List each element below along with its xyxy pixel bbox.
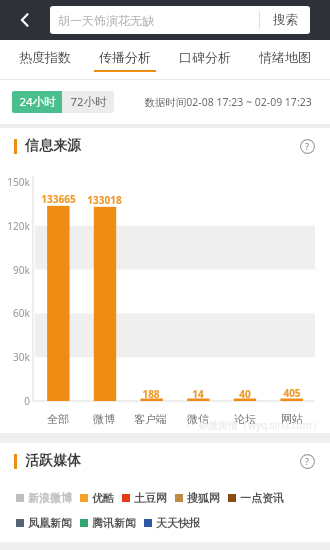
staticText: 网站: [281, 412, 303, 426]
staticText: 0: [24, 394, 30, 408]
staticText: 一点资讯: [240, 491, 284, 505]
button[interactable]: 热度指数: [14, 40, 76, 80]
staticText: 胡一天饰演花无缺: [58, 13, 154, 28]
staticText: 客户端: [134, 412, 167, 426]
button[interactable]: Help: [294, 133, 320, 159]
button[interactable]: Help: [294, 448, 320, 474]
staticText: @微舆情（wyq.sina.com）: [199, 418, 322, 432]
button[interactable]: 搜索: [260, 6, 310, 34]
button[interactable]: Back: [0, 0, 50, 40]
staticText: 情绪地图: [259, 49, 311, 65]
button[interactable]: 土豆网: [122, 489, 175, 507]
staticText: 信息来源: [25, 137, 81, 155]
button[interactable]: 天天快报: [144, 514, 208, 532]
staticText: 120k: [7, 219, 30, 233]
button[interactable]: 72小时: [62, 91, 114, 113]
button[interactable]: 24小时: [12, 91, 62, 113]
button[interactable]: 情绪地图: [254, 40, 316, 80]
button[interactable]: 胡一天饰演花无缺: [50, 6, 310, 34]
button[interactable]: 全部: [35, 405, 81, 433]
staticText: 搜狐网: [187, 491, 220, 505]
staticText: 活跃媒体: [25, 452, 81, 470]
staticText: 优酷: [92, 491, 114, 505]
button[interactable]: 腾讯新闻: [80, 514, 144, 532]
staticText: 60k: [13, 306, 30, 320]
button[interactable]: 微信: [174, 405, 221, 433]
staticText: 腾讯新闻: [92, 516, 136, 530]
staticText: 全部: [47, 412, 69, 426]
staticText: 微信: [187, 412, 209, 426]
button[interactable]: 搜狐网: [175, 489, 228, 507]
staticText: 24小时: [19, 94, 56, 110]
staticText: 40: [239, 387, 251, 401]
button[interactable]: 优酷: [80, 489, 122, 507]
button[interactable]: 客户端: [127, 405, 174, 433]
staticText: 30k: [13, 350, 30, 364]
staticText: ?: [305, 140, 309, 152]
staticText: 天天快报: [156, 516, 200, 530]
staticText: 土豆网: [134, 491, 167, 505]
staticText: 传播分析: [99, 49, 151, 65]
staticText: 150k: [7, 175, 30, 189]
button[interactable]: 传播分析: [94, 40, 156, 80]
button[interactable]: 新浪微博: [16, 489, 80, 507]
button[interactable]: 口碑分析: [174, 40, 236, 80]
staticText: 133665: [41, 192, 76, 206]
staticText: 133018: [87, 193, 122, 207]
staticText: 72小时: [70, 94, 107, 110]
staticText: 新浪微博: [28, 491, 72, 505]
staticText: 数据时间02-08 17:23 ~ 02-09 17:23: [144, 95, 312, 109]
staticText: 凤凰新闻: [28, 516, 72, 530]
staticText: 论坛: [234, 412, 256, 426]
button[interactable]: 微博: [81, 405, 127, 433]
staticText: 188: [142, 387, 160, 401]
staticText: ?: [305, 455, 309, 467]
staticText: 口碑分析: [179, 49, 231, 65]
staticText: 90k: [13, 263, 30, 277]
staticText: 405: [283, 386, 301, 400]
button[interactable]: 一点资讯: [228, 489, 292, 507]
staticText: 微博: [93, 412, 115, 426]
staticText: 搜索: [273, 12, 298, 28]
staticText: 热度指数: [19, 49, 71, 65]
staticText: 14: [192, 387, 204, 401]
button[interactable]: 凤凰新闻: [16, 514, 80, 532]
button[interactable]: 论坛: [221, 405, 268, 433]
button[interactable]: 网站: [268, 405, 315, 433]
